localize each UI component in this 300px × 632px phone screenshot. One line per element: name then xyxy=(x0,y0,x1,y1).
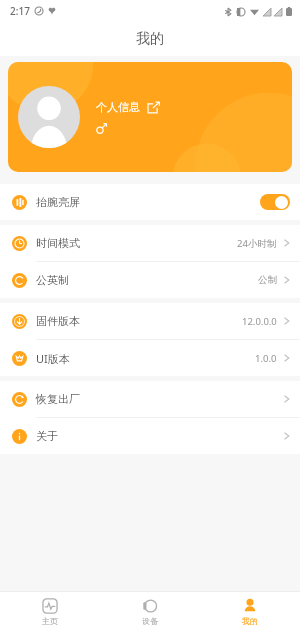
staticText: 时间模式 xyxy=(36,236,80,250)
staticText: 公制 xyxy=(258,274,277,286)
button[interactable]: 主页 xyxy=(0,592,100,632)
staticText: 2:17 xyxy=(10,4,30,18)
button[interactable]: 设备 xyxy=(100,592,200,632)
button[interactable]: 公英制 xyxy=(0,262,300,298)
button[interactable]: 时间模式 xyxy=(0,225,300,261)
staticText: 固件版本 xyxy=(36,314,80,328)
staticText: 设备 xyxy=(142,616,158,626)
button[interactable]: 关于 xyxy=(0,418,300,454)
staticText: UI版本 xyxy=(36,351,70,366)
button[interactable]: 恢复出厂 xyxy=(0,381,300,417)
button[interactable]: 固件版本 xyxy=(0,303,300,339)
staticText: 12.0.0.0 xyxy=(242,315,277,328)
button[interactable]: 抬腕亮屏开关 xyxy=(260,194,290,210)
staticText: 24小时制 xyxy=(237,237,277,250)
staticText: 我的 xyxy=(136,30,164,48)
staticText: 1.0.0 xyxy=(255,352,277,365)
button[interactable]: UI版本 xyxy=(0,340,300,376)
staticText: 恢复出厂 xyxy=(36,392,80,406)
staticText: 关于 xyxy=(36,429,58,443)
button[interactable]: 我的 xyxy=(200,592,300,632)
button[interactable]: 编辑个人信息 xyxy=(147,101,160,114)
staticText: 个人信息 xyxy=(96,100,140,114)
staticText: 我的 xyxy=(242,616,258,626)
button[interactable]: 抬腕亮屏 xyxy=(0,184,300,220)
button[interactable]: 头像 xyxy=(8,62,292,172)
staticText: 主页 xyxy=(42,616,58,626)
button[interactable]: 头像 xyxy=(18,86,80,148)
staticText: 抬腕亮屏 xyxy=(36,195,80,209)
staticText: 公英制 xyxy=(36,273,69,287)
